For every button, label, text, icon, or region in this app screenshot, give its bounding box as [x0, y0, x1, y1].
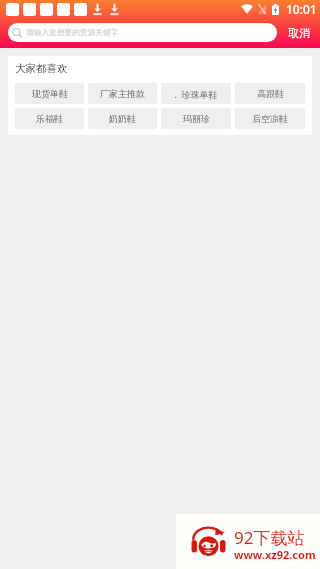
staticText: 乐福鞋	[36, 113, 63, 124]
staticText: 大家都喜欢	[15, 62, 68, 75]
staticText: 取消	[288, 26, 310, 40]
staticText: www.xz92.com	[234, 547, 316, 562]
staticText: 高跟鞋	[257, 88, 284, 99]
button[interactable]: 乐福鞋	[15, 108, 84, 129]
staticText: 后空凉鞋	[252, 113, 288, 124]
button[interactable]: 高跟鞋	[235, 83, 305, 104]
staticText: 奶奶鞋	[109, 113, 136, 124]
button[interactable]: . 珍珠单鞋	[161, 83, 231, 104]
staticText: 现货单鞋	[32, 88, 68, 99]
staticText: 请输入您想要的货源关键字	[26, 28, 119, 38]
button[interactable]: 厂家主推款	[88, 83, 157, 104]
button[interactable]: 现货单鞋	[15, 83, 84, 104]
button[interactable]: 玛丽珍	[161, 108, 231, 129]
other: Search	[12, 28, 23, 38]
button[interactable]: 后空凉鞋	[235, 108, 305, 129]
button[interactable]: 取消	[277, 26, 320, 40]
staticText: . 珍珠单鞋	[174, 88, 218, 100]
staticText: 玛丽珍	[183, 113, 210, 124]
staticText: 92下载站	[234, 526, 305, 549]
staticText: 10:01	[286, 1, 317, 17]
staticText: 厂家主推款	[100, 88, 145, 99]
button[interactable]: 奶奶鞋	[88, 108, 157, 129]
button[interactable]: Search	[8, 23, 277, 42]
